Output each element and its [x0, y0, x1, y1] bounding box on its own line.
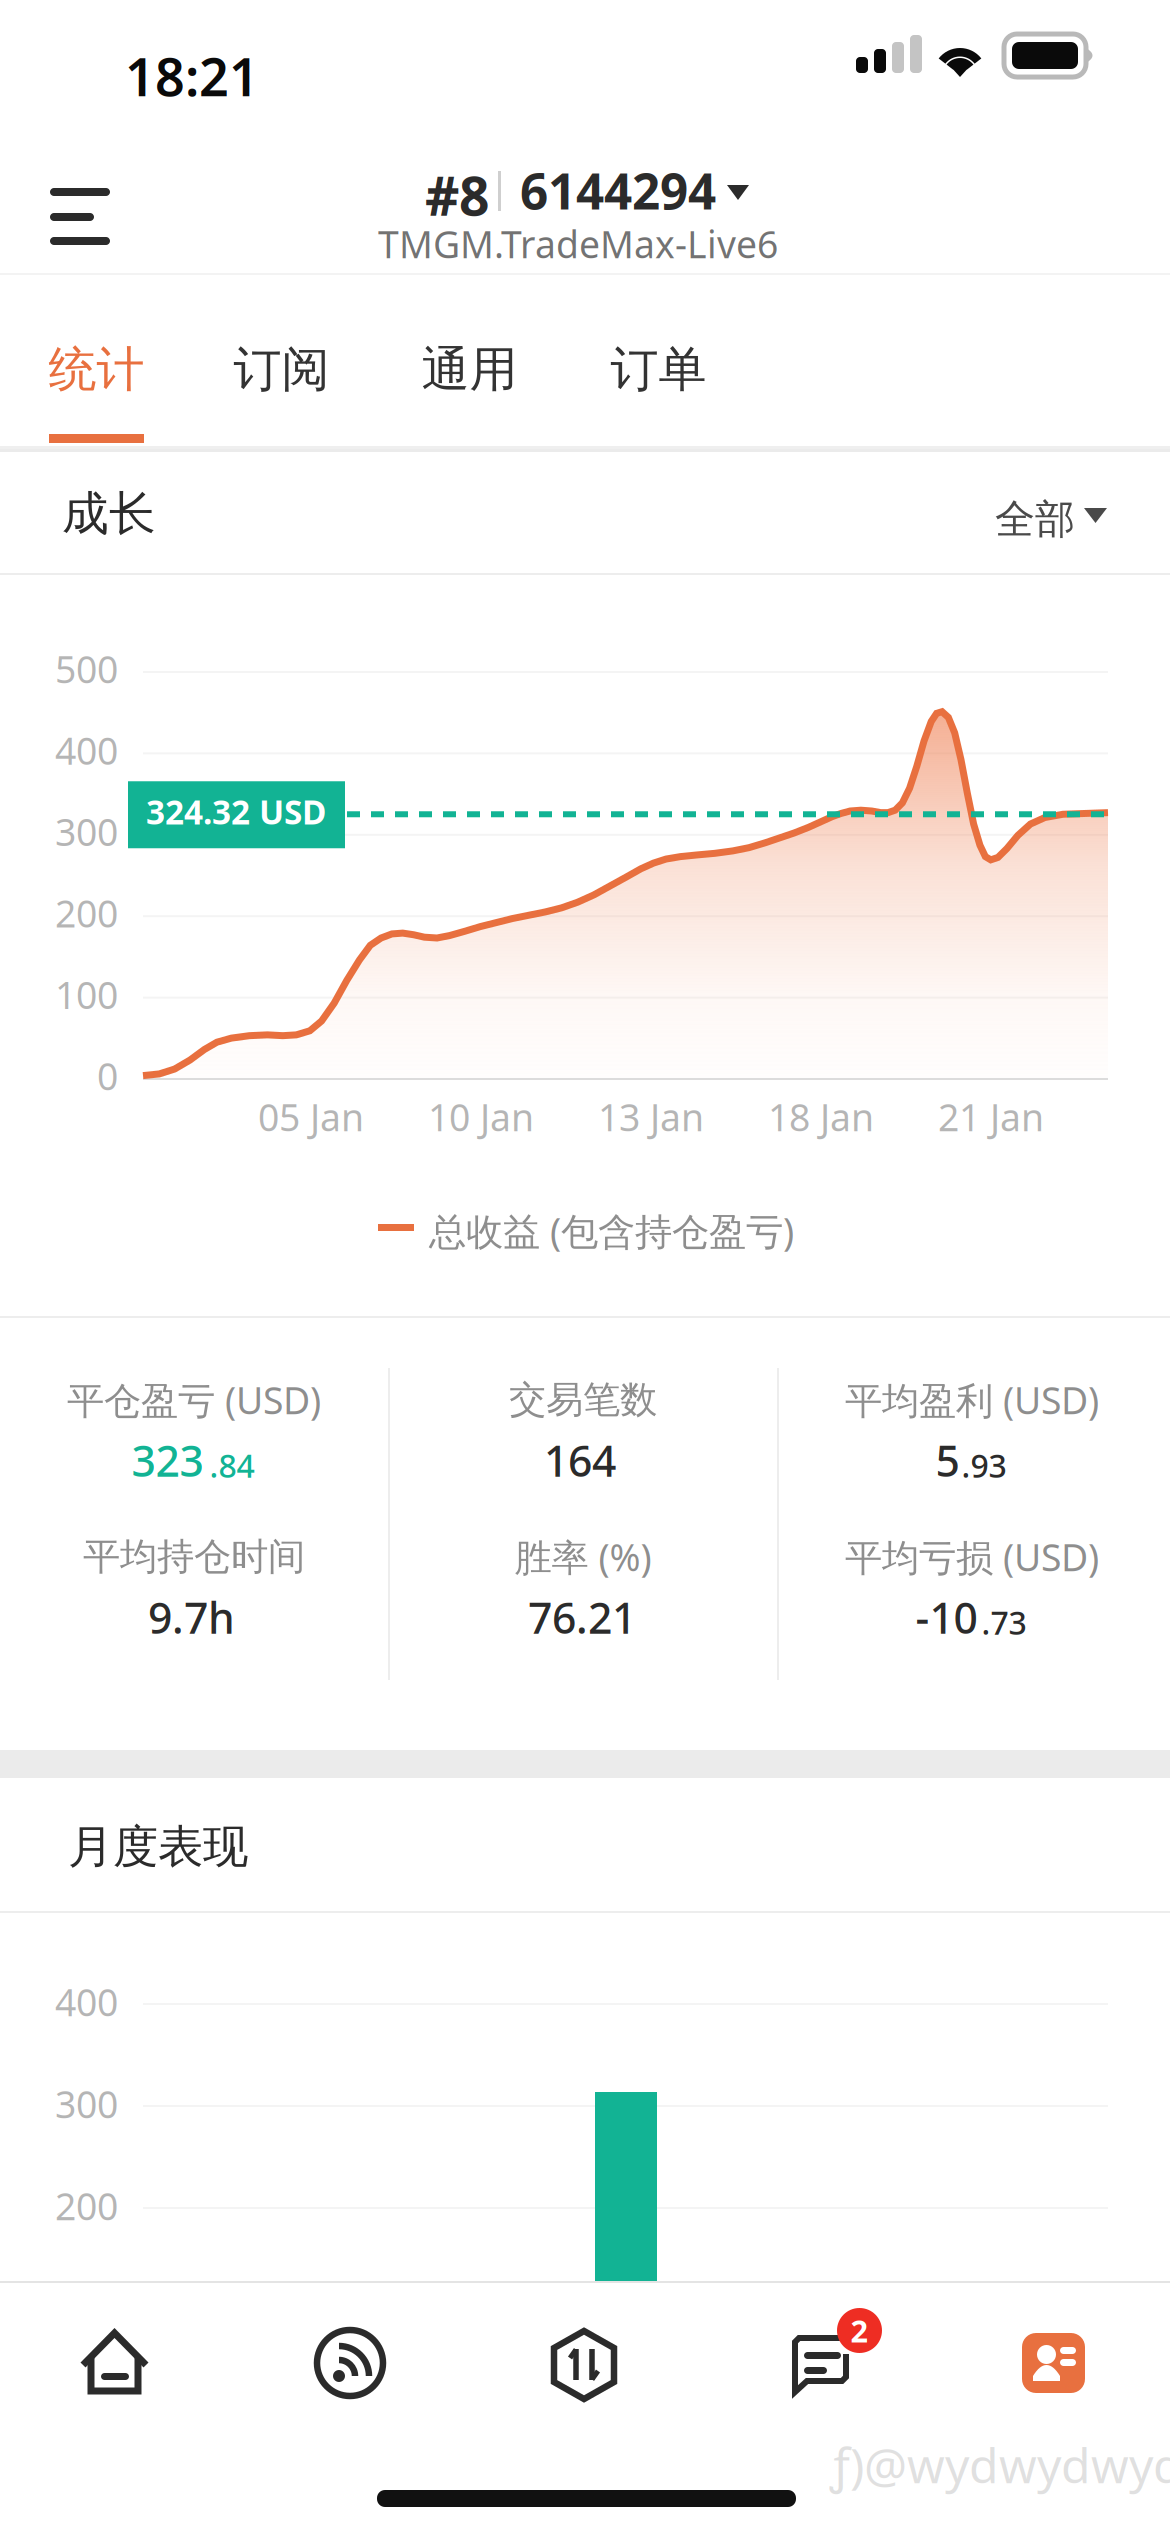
staticText: 6144294: [520, 158, 716, 223]
staticText: .84: [209, 1444, 254, 1487]
staticText: .73: [981, 1601, 1026, 1644]
button[interactable]: Feed: [265, 2302, 437, 2418]
staticText: 通用: [421, 340, 517, 399]
button[interactable]: 通用: [382, 280, 557, 446]
staticText: 订阅: [233, 340, 329, 399]
staticText: 05 Jan: [258, 1092, 364, 1142]
staticText: 平仓盈亏 (USD): [67, 1375, 321, 1425]
staticText: 400: [55, 725, 118, 775]
staticText: 18 Jan: [768, 1092, 874, 1142]
staticText: 10 Jan: [428, 1092, 534, 1142]
staticText: 21 Jan: [938, 1092, 1044, 1142]
staticText: 0: [97, 1051, 118, 1101]
staticText: 订单: [610, 340, 706, 399]
button[interactable]: 全部: [960, 480, 1130, 560]
staticText: 2: [850, 2310, 868, 2351]
staticText: 5: [935, 1432, 959, 1489]
button[interactable]: Home: [31, 2302, 203, 2418]
staticText: #8: [425, 160, 490, 230]
button[interactable]: 订单: [571, 280, 746, 446]
staticText: 统计: [48, 340, 144, 399]
staticText: 成长: [62, 485, 156, 542]
staticText: 总收益 (包含持仓盈亏): [429, 1206, 794, 1256]
staticText: 200: [55, 2181, 118, 2231]
staticText: 300: [55, 2079, 118, 2129]
button[interactable]: 订阅: [194, 280, 369, 446]
staticText: 13 Jan: [598, 1092, 704, 1142]
staticText: 9.7h: [148, 1589, 235, 1646]
staticText: TMGM.TradeMax-Live6: [378, 219, 778, 269]
staticText: 胜率 (%): [514, 1532, 651, 1582]
button[interactable]: Menu: [24, 160, 144, 273]
staticText: 400: [55, 1977, 118, 2027]
staticText: 200: [55, 888, 118, 938]
staticText: 交易笔数: [509, 1377, 657, 1423]
button[interactable]: Trade: [499, 2302, 671, 2418]
staticText: 平均持仓时间: [83, 1534, 305, 1580]
staticText: -10: [915, 1589, 977, 1646]
staticText: 324.32 USD: [146, 789, 326, 834]
staticText: 164: [544, 1432, 616, 1489]
staticText: 月度表现: [68, 1819, 248, 1875]
staticText: .93: [961, 1444, 1006, 1487]
button[interactable]: 统计: [9, 280, 184, 446]
button[interactable]: #8: [355, 158, 815, 276]
staticText: 平均亏损 (USD): [845, 1532, 1099, 1582]
staticText: 100: [55, 970, 118, 1019]
staticText: 300: [55, 807, 118, 856]
staticText: 76.21: [528, 1589, 636, 1646]
staticText: 323: [131, 1432, 203, 1489]
staticText: 500: [55, 644, 118, 694]
staticText: 全部: [995, 495, 1075, 544]
staticText: 18:21: [125, 42, 259, 111]
staticText: 平均盈利 (USD): [845, 1375, 1099, 1425]
staticText: ƒ)@wydwydwyd: [830, 2433, 1170, 2496]
button[interactable]: Messages: [733, 2302, 905, 2418]
button[interactable]: Profile: [967, 2302, 1139, 2418]
